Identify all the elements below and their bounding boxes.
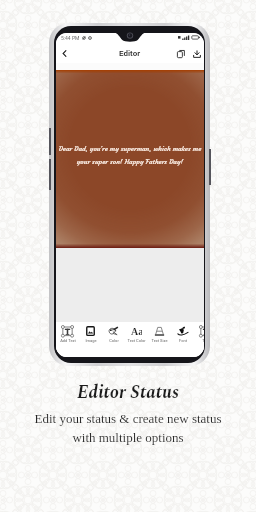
button[interactable]: Aa <box>125 326 148 343</box>
staticText: Text Size <box>151 338 168 343</box>
button[interactable]: Text Size <box>148 326 171 343</box>
button[interactable]: Image <box>79 326 102 343</box>
staticText: Text Color <box>127 338 146 343</box>
staticText: Edit your status & create new status wit… <box>34 411 222 445</box>
button[interactable]: Font <box>171 326 194 343</box>
staticText: 5:44 PM <box>61 35 80 41</box>
staticText: Text <box>202 338 204 343</box>
button[interactable]: Color <box>102 326 125 343</box>
staticText: Image <box>85 338 97 343</box>
button[interactable]: Back <box>57 46 71 60</box>
staticText: Add Text <box>60 338 76 343</box>
button[interactable]: Download <box>190 47 204 61</box>
button[interactable]: Text <box>194 326 204 343</box>
button[interactable]: Copy <box>174 47 188 61</box>
staticText: Dear Dad, you're my superman, which make… <box>56 145 204 166</box>
button[interactable]: Add Text <box>56 326 79 343</box>
staticText: Color <box>109 338 119 343</box>
staticText: Aa <box>131 326 142 336</box>
staticText: Editor Status <box>77 379 179 406</box>
staticText: Font <box>179 338 187 343</box>
staticText: Editor <box>119 49 141 58</box>
